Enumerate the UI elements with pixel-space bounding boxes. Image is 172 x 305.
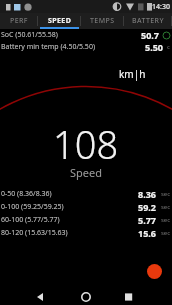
staticText: SPEED <box>48 16 72 26</box>
button[interactable]: PERF <box>0 13 38 29</box>
staticText: 108 <box>53 118 119 170</box>
button[interactable]: SoC (50.61/55.58) <box>0 29 172 41</box>
staticText: 0-50 (8.36/8.36) <box>1 189 52 199</box>
button[interactable]: BATTERY <box>124 13 172 29</box>
button[interactable]: Battery min temp (4.50/5.50) <box>0 41 172 53</box>
staticText: BATTERY <box>132 16 164 26</box>
staticText: 14:30 <box>152 2 170 12</box>
staticText: SoC (50.61/55.58) <box>1 30 58 40</box>
staticText: 80-120 (15.63/15.63) <box>1 228 68 238</box>
staticText: Speed <box>70 165 102 180</box>
staticText: Battery min temp (4.50/5.50) <box>1 42 95 52</box>
staticText: 59.2 <box>138 201 156 213</box>
button[interactable]: 60-100 (5.77/5.77) <box>0 213 172 226</box>
staticText: 8.36 <box>138 188 156 200</box>
staticText: km|h <box>119 67 146 81</box>
button[interactable]: TEMPS <box>81 13 124 29</box>
staticText: 60-100 (5.77/5.77) <box>1 215 60 225</box>
button[interactable]: 0-50 (8.36/8.36) <box>0 187 172 200</box>
staticText: TEMPS <box>90 16 115 26</box>
button[interactable]: 0-100 (59.25/59.25) <box>0 200 172 213</box>
staticText: sec <box>161 203 171 211</box>
staticText: PERF <box>10 16 28 26</box>
staticText: sec <box>161 229 171 237</box>
staticText: c <box>167 43 170 51</box>
staticText: sec <box>161 190 171 198</box>
button[interactable]: 80-120 (15.63/15.63) <box>0 226 172 239</box>
staticText: 5.50 <box>145 41 163 53</box>
staticText: 0-100 (59.25/59.25) <box>1 202 64 212</box>
staticText: 15.6 <box>138 227 156 239</box>
staticText: 50.7 <box>141 29 159 41</box>
staticText: sec <box>161 216 171 224</box>
staticText: 5.77 <box>138 214 156 226</box>
button[interactable]: SPEED <box>38 13 81 29</box>
button[interactable]: Record <box>147 264 162 279</box>
